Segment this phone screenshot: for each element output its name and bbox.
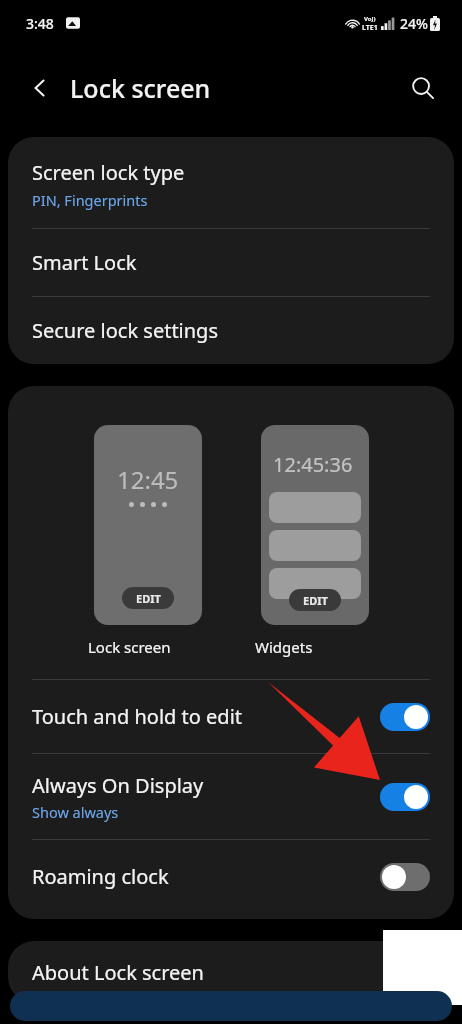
staticText: Show always — [32, 802, 119, 822]
button[interactable]: EDIT — [122, 587, 174, 609]
button[interactable]: Back — [18, 66, 62, 110]
button[interactable] — [380, 703, 430, 731]
staticText: About Lock screen — [32, 959, 204, 986]
button[interactable]: Screen lock type — [8, 137, 454, 228]
button[interactable]: Secure lock settings — [8, 297, 454, 364]
staticText: EDIT — [136, 591, 161, 606]
button[interactable] — [380, 863, 430, 891]
staticText: 12:45:36 — [273, 451, 353, 478]
staticText: Lock screen — [70, 71, 211, 105]
button[interactable]: 12:45 — [94, 425, 202, 625]
button[interactable]: About Lock screen — [8, 941, 454, 1003]
staticText: 12:45 — [117, 463, 179, 496]
staticText: Widgets — [255, 637, 375, 657]
staticText: Always On Display — [32, 772, 204, 799]
button[interactable] — [380, 783, 430, 811]
staticText: Secure lock settings — [32, 317, 218, 344]
staticText: Screen lock type — [32, 159, 185, 186]
staticText: LTE1 — [362, 23, 378, 33]
staticText: Roaming clock — [32, 863, 169, 890]
staticText: PIN, Fingerprints — [32, 190, 148, 210]
staticText: Lock screen — [88, 637, 208, 657]
button[interactable]: Roaming clock — [8, 840, 454, 913]
button[interactable]: Smart Lock — [8, 229, 454, 296]
staticText: 24% — [400, 14, 428, 33]
staticText: Smart Lock — [32, 249, 137, 276]
staticText: Touch and hold to edit — [32, 703, 243, 730]
staticText: 3:48 — [26, 14, 54, 33]
staticText: EDIT — [303, 593, 328, 608]
button[interactable]: EDIT — [289, 589, 341, 611]
button[interactable]: Always On Display — [8, 754, 454, 839]
button[interactable]: Search — [400, 65, 446, 111]
staticText: VoJ) — [364, 15, 376, 23]
button[interactable]: 12:45:36 — [261, 425, 369, 625]
button[interactable]: Touch and hold to edit — [8, 680, 454, 753]
